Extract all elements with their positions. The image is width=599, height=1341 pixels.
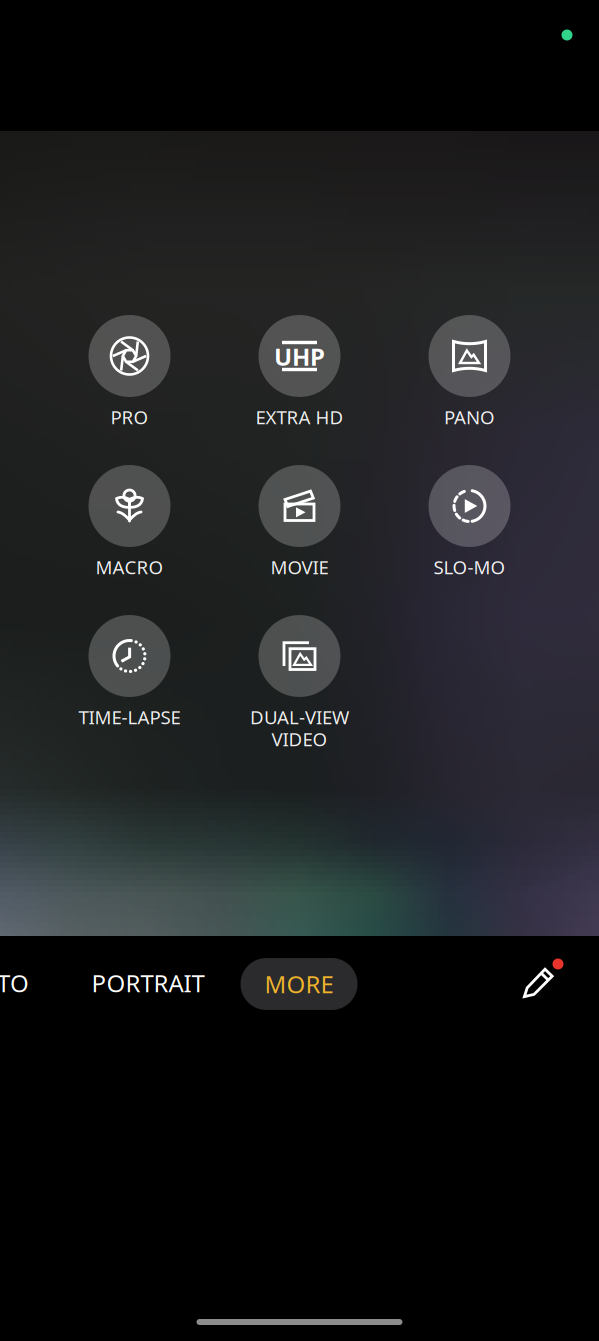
button[interactable]: MOVIE: [215, 465, 383, 615]
button[interactable]: DUAL-VIEW: [215, 615, 383, 765]
button[interactable]: PORTRAIT: [73, 961, 223, 1005]
button[interactable]: PANO: [385, 315, 553, 465]
button[interactable]: MACRO: [45, 465, 213, 615]
button[interactable]: PHOTO: [0, 961, 29, 1005]
staticText: VIDEO: [271, 727, 327, 751]
staticText: TIME-LAPSE: [78, 705, 180, 729]
button[interactable]: UHP: [215, 315, 383, 465]
staticText: PHOTO: [0, 967, 29, 999]
button[interactable]: SLO-MO: [385, 465, 553, 615]
button[interactable]: Edit camera modes: [513, 956, 565, 1008]
staticText: MORE: [264, 968, 333, 1000]
staticText: MACRO: [95, 555, 163, 579]
staticText: EXTRA HD: [255, 405, 343, 429]
staticText: SLO-MO: [433, 555, 505, 579]
staticText: PRO: [110, 405, 148, 429]
staticText: PORTRAIT: [91, 967, 204, 999]
staticText: MOVIE: [270, 555, 328, 579]
button[interactable]: TIME-LAPSE: [45, 615, 213, 765]
staticText: DUAL-VIEW: [250, 705, 349, 729]
button[interactable]: PRO: [45, 315, 213, 465]
button[interactable]: MORE: [240, 958, 357, 1010]
staticText: UHP: [274, 341, 325, 372]
staticText: PANO: [444, 405, 495, 429]
